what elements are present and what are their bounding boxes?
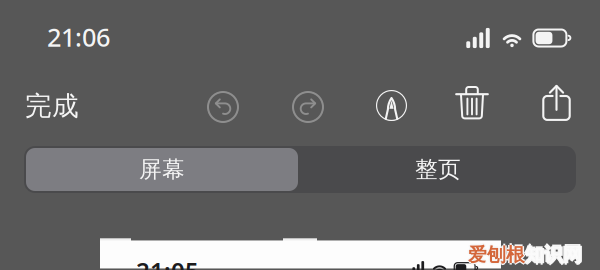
button[interactable]: Share [542, 84, 571, 121]
button[interactable]: Undo [208, 92, 238, 122]
staticText: 爱刨根知识网 [466, 243, 580, 266]
staticText: 完成 [25, 90, 79, 122]
button[interactable]: Redo [293, 92, 323, 122]
button[interactable]: Delete [456, 83, 488, 119]
button[interactable]: 屏幕 [24, 146, 300, 193]
staticText: 屏幕 [139, 156, 185, 183]
staticText: 爱刨根知识网 [468, 242, 582, 264]
staticText: 爱刨根 [468, 243, 525, 266]
staticText: 爱刨根知识网 [470, 243, 584, 266]
staticText: 爱刨根知识网 [468, 245, 582, 268]
button[interactable]: 完成 [25, 86, 135, 126]
button[interactable]: Markup [376, 90, 407, 121]
staticText: 知识网 [525, 243, 582, 266]
staticText: 整页 [415, 156, 461, 183]
staticText: 21:05 [136, 255, 199, 270]
button[interactable]: 整页 [300, 146, 576, 193]
staticText: 21:06 [47, 20, 110, 54]
